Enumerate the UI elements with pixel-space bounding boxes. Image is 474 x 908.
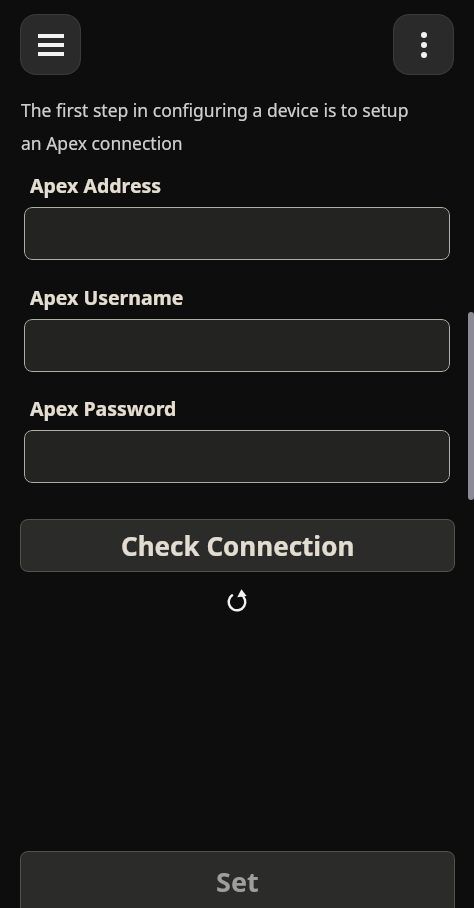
button[interactable] [24,207,450,260]
button[interactable]: More options [393,14,454,75]
staticText: Apex Username [30,284,184,311]
staticText: Apex Address [30,172,162,199]
button[interactable]: Set [20,851,455,908]
button[interactable]: Check Connection [20,519,455,572]
staticText: The first step in configuring a device i… [21,98,409,122]
staticText: Check Connection [121,528,355,563]
staticText: Set [216,863,259,900]
staticText: an Apex connection [21,131,183,155]
staticText: Apex Password [30,395,177,422]
button[interactable]: Refresh [225,590,249,614]
button[interactable] [24,319,450,372]
button[interactable] [24,430,450,483]
button[interactable]: Menu [20,14,81,75]
